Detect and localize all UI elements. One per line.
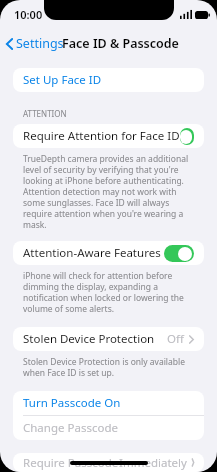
button[interactable]: Require Attention for Face ID bbox=[13, 124, 204, 148]
staticText: Stolen Device Protection is only availab… bbox=[23, 356, 198, 378]
staticText: iPhone will check for attention before d… bbox=[23, 270, 198, 314]
staticText: Immediately bbox=[119, 455, 187, 471]
staticText: Attention-Aware Features bbox=[23, 245, 161, 261]
staticText: 10:00 bbox=[14, 7, 43, 22]
button[interactable]: Toggle Require Attention for Face ID bbox=[180, 128, 194, 145]
staticText: Face ID & Passcode bbox=[62, 35, 179, 52]
button[interactable]: Toggle Attention-Aware Features bbox=[164, 245, 194, 262]
staticText: Turn Passcode On bbox=[23, 395, 121, 411]
staticText: Settings bbox=[16, 35, 64, 52]
staticText: Stolen Device Protection bbox=[23, 331, 155, 347]
button[interactable]: Settings bbox=[0, 31, 68, 56]
staticText: Require Passcode bbox=[23, 455, 119, 471]
button[interactable]: Attention-Aware Features bbox=[13, 241, 204, 265]
staticText: Off bbox=[167, 331, 184, 347]
staticText: TrueDepth camera provides an additional … bbox=[23, 153, 198, 230]
staticText: ATTENTION bbox=[23, 108, 67, 119]
staticText: Change Passcode bbox=[23, 420, 118, 436]
staticText: Set Up Face ID bbox=[23, 72, 102, 88]
button[interactable]: Turn Passcode On bbox=[13, 391, 204, 415]
button[interactable]: Stolen Device Protection bbox=[13, 327, 204, 351]
staticText: Require Attention for Face ID bbox=[23, 128, 180, 144]
button[interactable]: Require Passcode bbox=[13, 453, 204, 472]
button[interactable]: Set Up Face ID bbox=[13, 68, 204, 92]
button[interactable]: Change Passcode bbox=[13, 416, 204, 440]
